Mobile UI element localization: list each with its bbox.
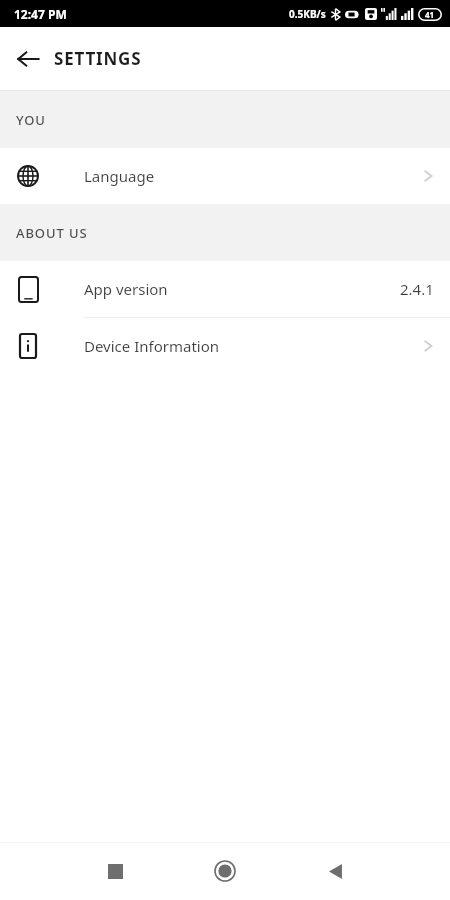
button[interactable]: Back — [280, 842, 390, 900]
button[interactable]: Back — [8, 39, 48, 79]
staticText: 0.5KB/s — [289, 7, 326, 21]
button[interactable]: Home — [170, 842, 280, 900]
button[interactable]: Recent apps — [60, 842, 170, 900]
staticText: Device Information — [84, 336, 220, 356]
staticText: 2.4.1 — [400, 279, 434, 299]
staticText: ABOUT US — [16, 224, 88, 242]
button[interactable]: App version — [0, 261, 450, 317]
staticText: 12:47 PM — [14, 6, 67, 22]
staticText: App version — [84, 279, 168, 299]
button[interactable]: Device Information — [0, 318, 450, 374]
staticText: Language — [84, 166, 155, 186]
staticText: 41 — [425, 9, 435, 20]
staticText: YOU — [16, 111, 46, 129]
button[interactable]: Language — [0, 148, 450, 204]
staticText: SETTINGS — [54, 47, 142, 70]
